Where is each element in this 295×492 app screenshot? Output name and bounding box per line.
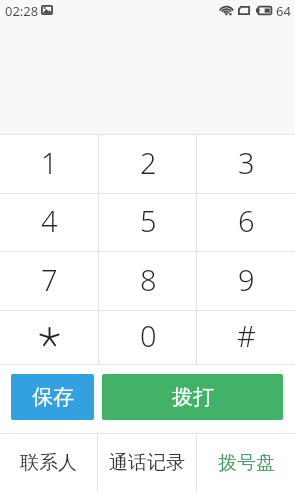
button[interactable]: 1 bbox=[0, 135, 99, 193]
staticText: 64 bbox=[276, 2, 291, 20]
staticText: 4 bbox=[41, 201, 58, 240]
button[interactable]: 5 bbox=[99, 194, 197, 251]
button[interactable]: 拨号盘 bbox=[197, 434, 295, 492]
button[interactable]: 9 bbox=[197, 252, 295, 310]
button[interactable]: 联系人 bbox=[0, 434, 97, 492]
staticText: 通话记录 bbox=[109, 451, 185, 475]
staticText: 7 bbox=[41, 260, 58, 299]
staticText: 拨打 bbox=[172, 384, 214, 410]
staticText: 保存 bbox=[32, 384, 74, 410]
button[interactable]: 6 bbox=[197, 194, 295, 251]
staticText: 拨号盘 bbox=[218, 451, 275, 475]
button[interactable]: # bbox=[197, 311, 295, 364]
staticText: 2 bbox=[140, 143, 157, 182]
button[interactable]: 4 bbox=[0, 194, 99, 251]
staticText: 联系人 bbox=[20, 451, 77, 475]
staticText: 3 bbox=[238, 143, 255, 182]
button[interactable] bbox=[0, 311, 99, 364]
button[interactable]: 保存 bbox=[11, 374, 94, 420]
button[interactable]: 7 bbox=[0, 252, 99, 310]
staticText: 02:28 bbox=[5, 2, 39, 20]
staticText: 8 bbox=[140, 260, 157, 299]
button[interactable]: 3 bbox=[197, 135, 295, 193]
button[interactable]: 8 bbox=[99, 252, 197, 310]
staticText: 5 bbox=[140, 201, 157, 240]
staticText: # bbox=[237, 316, 256, 355]
button[interactable]: 通话记录 bbox=[98, 434, 196, 492]
button[interactable]: 拨打 bbox=[102, 374, 283, 420]
button[interactable]: 0 bbox=[99, 311, 197, 364]
staticText: 0 bbox=[140, 316, 157, 355]
staticText: 9 bbox=[238, 260, 255, 299]
staticText: 1 bbox=[41, 143, 58, 182]
staticText: 6 bbox=[238, 201, 255, 240]
button[interactable]: 2 bbox=[99, 135, 197, 193]
